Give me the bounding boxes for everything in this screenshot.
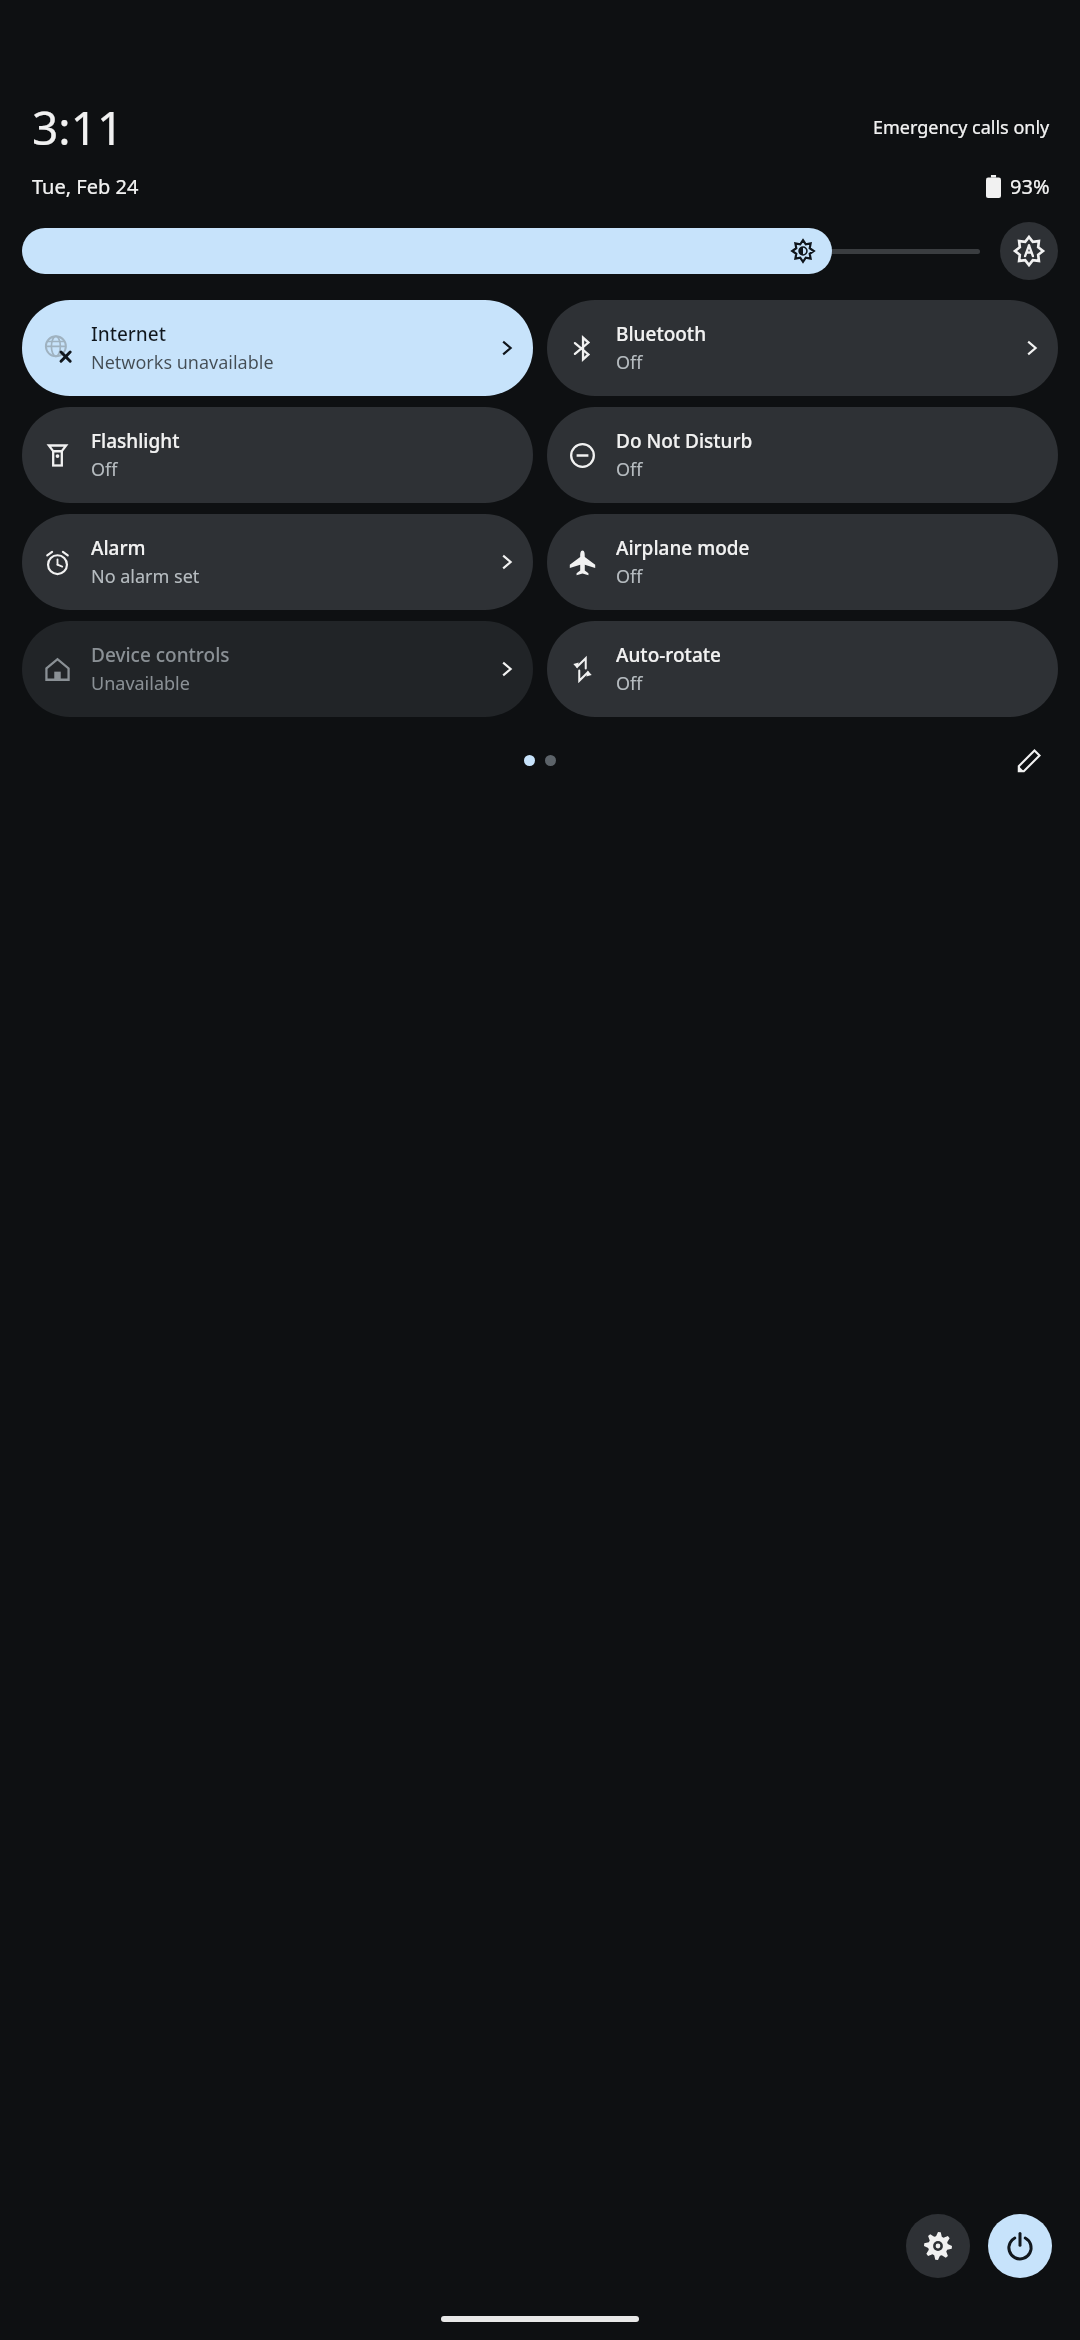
staticText: 3:11 [32, 96, 124, 159]
staticText: No alarm set [91, 564, 200, 589]
button[interactable]: Auto-rotate [547, 621, 1058, 717]
staticText: Airplane mode [616, 535, 750, 561]
staticText: 93% [1010, 173, 1050, 200]
staticText: Flashlight [91, 428, 180, 454]
button[interactable]: Flashlight [22, 407, 533, 503]
staticText: Emergency calls only [873, 115, 1050, 140]
staticText: Off [91, 457, 118, 482]
staticText: Tue, Feb 24 [32, 173, 139, 200]
staticText: Auto-rotate [616, 642, 721, 668]
button[interactable]: Power [988, 2214, 1052, 2278]
staticText: Off [616, 457, 643, 482]
button[interactable]: Settings [906, 2214, 970, 2278]
button[interactable] [22, 228, 980, 274]
staticText: Bluetooth [616, 321, 707, 347]
staticText: Do Not Disturb [616, 428, 753, 454]
button[interactable]: Auto brightness [1000, 222, 1058, 280]
button[interactable]: Internet [22, 300, 533, 396]
button[interactable]: Edit tiles [1008, 738, 1052, 782]
staticText: Networks unavailable [91, 350, 274, 375]
staticText: Device controls [91, 642, 230, 668]
staticText: Off [616, 671, 643, 696]
button[interactable]: Bluetooth [547, 300, 1058, 396]
staticText: Internet [91, 321, 166, 347]
staticText: Off [616, 350, 643, 375]
button[interactable]: Alarm [22, 514, 533, 610]
button[interactable]: Device controls [22, 621, 533, 717]
staticText: Unavailable [91, 671, 190, 696]
staticText: Off [616, 564, 643, 589]
button[interactable]: Do Not Disturb [547, 407, 1058, 503]
button[interactable]: Airplane mode [547, 514, 1058, 610]
staticText: Alarm [91, 535, 146, 561]
